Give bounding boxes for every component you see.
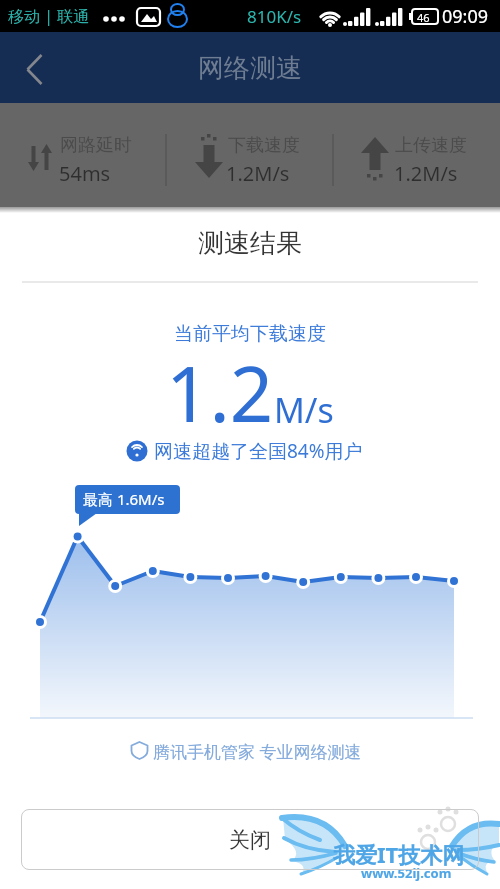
staticText: 下载速度: [228, 134, 300, 157]
staticText: 测速结果: [198, 227, 302, 260]
staticText: 810K/s: [247, 5, 302, 28]
staticText: 网络测速: [198, 52, 302, 85]
button[interactable]: [10, 42, 60, 92]
staticText: www.52ij.com: [361, 864, 452, 882]
staticText: 我爱IT技术网: [333, 839, 465, 869]
staticText: 09:09: [442, 4, 489, 29]
staticText: 54ms: [59, 160, 111, 187]
button[interactable]: 关闭: [21, 809, 479, 870]
staticText: 网速超越了全国84%用户: [154, 438, 363, 464]
staticText: 46: [417, 10, 430, 25]
staticText: M/s: [274, 387, 334, 433]
staticText: 1.2: [166, 341, 274, 445]
staticText: 移动 | 联通: [8, 5, 90, 27]
staticText: 上传速度: [395, 134, 467, 157]
staticText: 当前平均下载速度: [174, 322, 326, 346]
staticText: 网路延时: [60, 134, 132, 157]
staticText: 1.2M/s: [394, 160, 458, 187]
staticText: 最高 1.6M/s: [83, 489, 165, 509]
staticText: 1.2M/s: [226, 160, 290, 187]
staticText: 腾讯手机管家 专业网络测速: [153, 740, 362, 763]
staticText: 关闭: [229, 827, 271, 853]
